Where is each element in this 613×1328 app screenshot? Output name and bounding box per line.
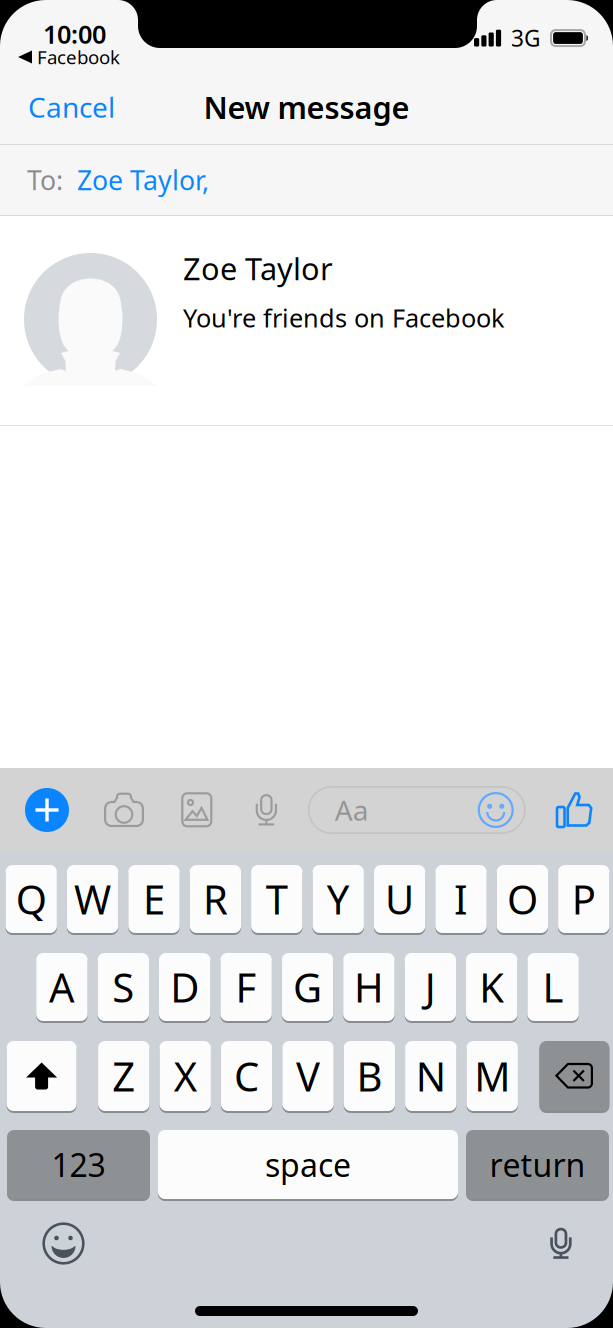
button[interactable]: L <box>527 953 579 1023</box>
button[interactable]: I <box>435 865 487 935</box>
button[interactable]: J <box>405 953 456 1023</box>
staticText: T <box>266 872 288 925</box>
button[interactable]: More options <box>25 788 69 832</box>
staticText: B <box>356 1049 382 1102</box>
button[interactable]: return <box>466 1130 609 1201</box>
button[interactable]: C <box>221 1041 272 1113</box>
staticText: You're friends on Facebook <box>183 301 505 334</box>
button[interactable]: Back to Facebook <box>18 47 120 67</box>
staticText: Cancel <box>28 88 115 126</box>
button[interactable]: S <box>98 953 149 1023</box>
staticText: Q <box>16 872 47 925</box>
button[interactable]: A <box>36 953 88 1023</box>
staticText: space <box>265 1143 351 1186</box>
button[interactable]: 123 <box>7 1130 150 1201</box>
staticText: F <box>236 960 257 1013</box>
staticText: C <box>234 1049 259 1102</box>
button[interactable]: Dictation <box>551 1228 571 1259</box>
staticText: New message <box>203 87 409 127</box>
staticText: N <box>416 1049 446 1102</box>
staticText: return <box>489 1143 585 1186</box>
staticText: 3G <box>511 23 541 53</box>
button[interactable]: V <box>282 1041 334 1113</box>
button[interactable]: Cancel <box>0 78 131 136</box>
staticText: Zoe Taylor <box>183 248 333 289</box>
staticText: W <box>74 872 111 925</box>
button[interactable]: F <box>220 953 272 1023</box>
staticText: Facebook <box>37 45 120 69</box>
staticText: S <box>112 960 134 1013</box>
button[interactable]: M <box>466 1041 518 1113</box>
button[interactable]: space <box>158 1130 458 1201</box>
button[interactable]: O <box>497 865 548 935</box>
button[interactable]: Camera <box>104 792 144 827</box>
button[interactable]: Zoe Taylor <box>0 216 613 425</box>
staticText: E <box>143 872 165 925</box>
staticText: X <box>174 1049 197 1102</box>
button[interactable]: W <box>67 865 118 935</box>
button[interactable]: Zoe Taylor, <box>63 145 217 215</box>
button[interactable]: Delete <box>539 1041 609 1113</box>
button[interactable]: K <box>466 953 517 1023</box>
staticText: Zoe Taylor, <box>77 162 209 198</box>
button[interactable]: Z <box>98 1041 149 1113</box>
button[interactable]: Photos <box>181 792 213 828</box>
staticText: 10:00 <box>43 17 106 51</box>
staticText: U <box>385 872 414 925</box>
staticText: Y <box>327 872 350 925</box>
button[interactable]: Send like <box>556 791 594 829</box>
staticText: O <box>507 872 538 925</box>
staticText: Z <box>112 1049 135 1102</box>
staticText: D <box>170 960 199 1013</box>
staticText: I <box>454 872 468 925</box>
button[interactable]: Shift <box>7 1041 77 1113</box>
button[interactable]: Aa <box>308 786 526 834</box>
button[interactable]: Q <box>5 865 57 935</box>
button[interactable]: N <box>405 1041 456 1113</box>
staticText: 123 <box>51 1143 105 1186</box>
staticText: P <box>572 872 596 925</box>
button[interactable]: U <box>374 865 425 935</box>
staticText: To: <box>27 162 63 198</box>
staticText: R <box>203 872 228 925</box>
staticText: M <box>474 1049 510 1102</box>
staticText: A <box>49 960 75 1013</box>
button[interactable]: R <box>190 865 241 935</box>
button[interactable]: X <box>159 1041 211 1113</box>
staticText: G <box>293 960 322 1013</box>
button[interactable]: Voice message <box>256 794 277 826</box>
button[interactable]: T <box>251 865 302 935</box>
button[interactable]: P <box>558 865 609 935</box>
button[interactable]: H <box>343 953 395 1023</box>
button[interactable]: E <box>128 865 180 935</box>
staticText: L <box>543 960 564 1013</box>
staticText: K <box>479 960 504 1013</box>
staticText: J <box>425 960 436 1013</box>
button[interactable]: G <box>282 953 333 1023</box>
button[interactable]: Y <box>312 865 364 935</box>
staticText: V <box>296 1049 320 1102</box>
button[interactable]: D <box>159 953 210 1023</box>
button[interactable]: B <box>344 1041 395 1113</box>
staticText: Aa <box>335 791 369 829</box>
staticText: H <box>354 960 384 1013</box>
button[interactable]: Emoji keyboard <box>42 1222 85 1265</box>
